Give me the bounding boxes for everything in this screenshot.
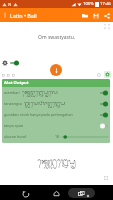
staticText: ᬓ᭄ᬘᬾᬭ᭄ᬙᬍᬾᬟ᭄ᬣᬮᬾ	[22, 88, 58, 98]
button[interactable]: Toggle	[100, 101, 108, 107]
staticText: 17:46	[100, 1, 111, 7]
button[interactable]: Open file	[79, 10, 90, 21]
staticText: tanpa spasi	[4, 123, 24, 128]
button[interactable]: asembari	[4, 87, 108, 98]
staticText: N	[8, 2, 12, 7]
button[interactable]: Toggle	[100, 90, 108, 96]
button[interactable]: Toggle	[100, 112, 108, 118]
button[interactable]: Save	[90, 10, 101, 21]
staticText: ᬕ᭄ᬮᬬᬾᬨᬚᬭ᭄ᬙᬍᬾᬟ	[24, 99, 66, 109]
button[interactable]: Redo	[6, 73, 11, 78]
button[interactable]: Home	[52, 189, 61, 198]
staticText: Latin • Bali	[10, 12, 37, 19]
staticText: ukuran huruf	[4, 134, 27, 139]
button[interactable]: Recent apps	[77, 189, 86, 198]
button[interactable]: Settings	[1, 59, 9, 67]
button[interactable]: Share	[101, 10, 112, 21]
button[interactable]: Font size slider	[62, 133, 108, 141]
button[interactable]: Transliterate	[50, 64, 62, 76]
button[interactable]: Panel settings	[104, 71, 111, 78]
button[interactable]: Back	[21, 189, 30, 198]
button[interactable]: tanpa spasi	[4, 120, 108, 131]
button[interactable]: Toggle	[100, 123, 108, 129]
button[interactable]: Clear	[11, 73, 16, 78]
staticText: 18	[55, 134, 60, 139]
staticText: 100%	[83, 1, 94, 7]
staticText: asembari	[4, 90, 20, 95]
staticText: Alat Output	[4, 80, 29, 86]
button[interactable]: Toggle	[10, 60, 19, 66]
button[interactable]: Undo	[1, 73, 6, 78]
staticText: tarwangsa	[4, 101, 22, 106]
staticText: gunakan cecek hanya pada pertengahan	[4, 112, 73, 117]
staticText: ᬓ᭄ᬘᬾᬭ᭄ᬙᬍᬾᬟ᭄ᬣ	[37, 155, 76, 169]
button[interactable]: gunakan cecek hanya pada pertengahan	[4, 109, 108, 120]
button[interactable]: tarwangsa	[4, 98, 108, 109]
staticText: Om swastyastu.	[38, 34, 76, 41]
button[interactable]: Navigation menu	[0, 10, 10, 20]
